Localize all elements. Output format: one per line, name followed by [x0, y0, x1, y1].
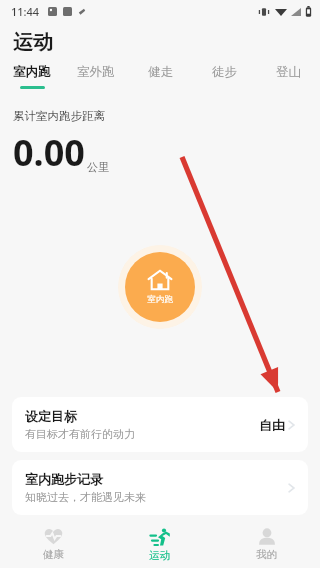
button[interactable]: 开始室内跑 [118, 245, 202, 329]
staticText: 有目标才有前行的动力 [25, 427, 135, 441]
staticText: 公里 [87, 160, 109, 174]
staticText: 自由 [259, 417, 285, 433]
staticText: 我的 [256, 548, 277, 561]
button[interactable]: 我的 [213, 521, 320, 568]
staticText: 室内跑 [147, 294, 173, 305]
staticText: 健走 [148, 64, 173, 80]
staticText: 11:44 [11, 4, 40, 19]
staticText: 健康 [43, 548, 64, 561]
button[interactable]: 室内跑步记录 [12, 460, 308, 515]
button[interactable]: 登山 [256, 62, 320, 92]
staticText: 登山 [276, 64, 301, 80]
staticText: 累计室内跑步距离 [13, 109, 105, 123]
button[interactable]: 徒步 [192, 62, 256, 92]
button[interactable]: 室外跑 [64, 62, 128, 92]
button[interactable]: 健康 [0, 521, 106, 568]
staticText: 室内跑步记录 [25, 471, 103, 487]
staticText: 徒步 [212, 64, 237, 80]
staticText: 运动 [149, 549, 170, 562]
staticText: 室外跑 [77, 64, 115, 80]
staticText: 0.00 [13, 128, 85, 177]
button[interactable]: 室内跑 [0, 62, 64, 92]
staticText: 运动 [13, 30, 53, 55]
button[interactable]: 健走 [128, 62, 192, 92]
button[interactable]: 设定目标 [12, 397, 308, 452]
staticText: 设定目标 [25, 408, 77, 424]
staticText: 室内跑 [13, 64, 51, 80]
staticText: 知晓过去，才能遇见未来 [25, 490, 146, 504]
button[interactable]: 运动 [106, 521, 213, 568]
